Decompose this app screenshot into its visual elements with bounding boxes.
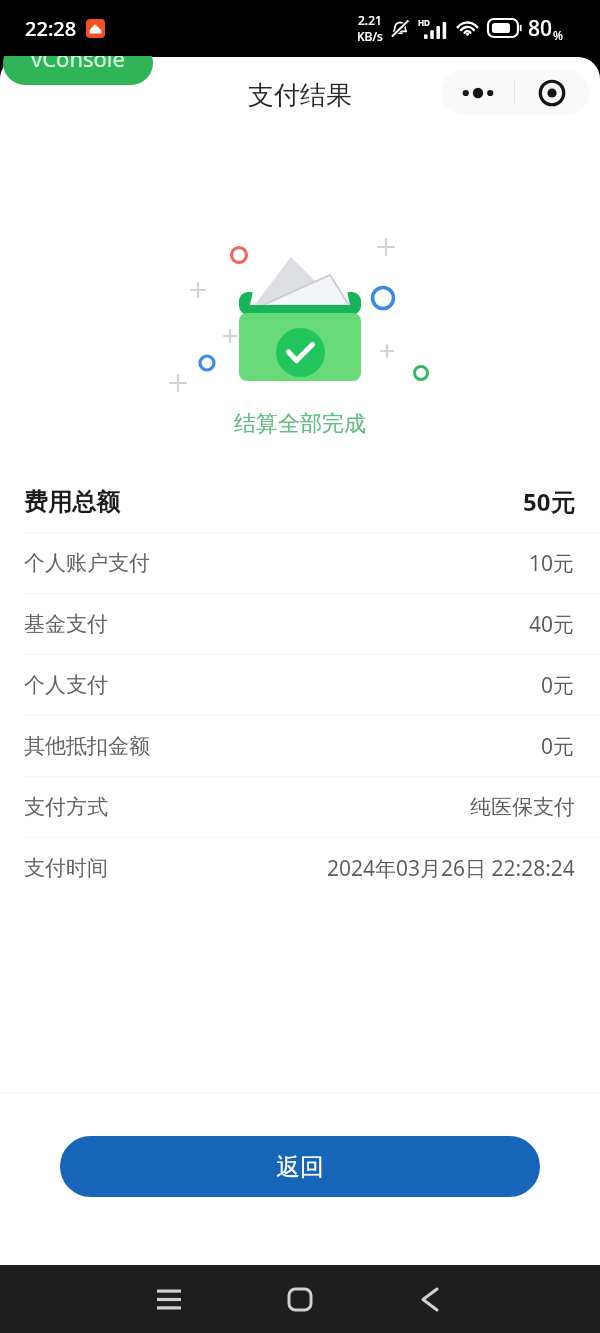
staticText: 其他抵扣金额 (24, 733, 150, 759)
staticText: 支付方式 (24, 794, 108, 820)
staticText: 支付时间 (24, 855, 108, 881)
staticText: % (553, 27, 563, 43)
staticText: 返回 (276, 1152, 324, 1182)
staticText: 0元 (541, 671, 575, 700)
button[interactable]: 个人支付 (0, 655, 600, 715)
button[interactable]: 基金支付 (0, 594, 600, 654)
button[interactable]: Close mini program (515, 70, 589, 115)
staticText: 0元 (541, 732, 575, 761)
button[interactable]: vConsole (3, 41, 153, 85)
staticText: 个人支付 (24, 672, 108, 698)
button[interactable]: Recent apps (133, 1265, 205, 1333)
staticText: vConsole (31, 43, 125, 73)
staticText: 80 (528, 14, 553, 43)
staticText: 22:28 (25, 15, 77, 42)
button[interactable]: 返回 (60, 1136, 540, 1197)
button[interactable]: 费用总额 (0, 471, 600, 532)
staticText: 50元 (523, 485, 575, 518)
staticText: 个人账户支付 (24, 550, 150, 576)
staticText: 40元 (529, 610, 575, 639)
staticText: 费用总额 (24, 487, 120, 517)
button[interactable]: More options (441, 70, 514, 115)
button[interactable]: 支付时间 (0, 838, 600, 898)
staticText: KB/s (357, 28, 383, 44)
staticText: 纯医保支付 (470, 794, 575, 820)
button[interactable]: 个人账户支付 (0, 533, 600, 593)
staticText: 结算全部完成 (234, 410, 366, 438)
button[interactable]: 其他抵扣金额 (0, 716, 600, 776)
staticText: HD (418, 17, 430, 28)
staticText: 10元 (529, 549, 575, 578)
staticText: 基金支付 (24, 611, 108, 637)
button[interactable]: 支付方式 (0, 777, 600, 837)
staticText: 2024年03月26日 22:28:24 (327, 854, 575, 883)
staticText: 2.21 (358, 12, 382, 28)
button[interactable]: Back (394, 1265, 466, 1333)
staticText: 支付结果 (248, 79, 352, 112)
button[interactable]: Home (264, 1265, 336, 1333)
